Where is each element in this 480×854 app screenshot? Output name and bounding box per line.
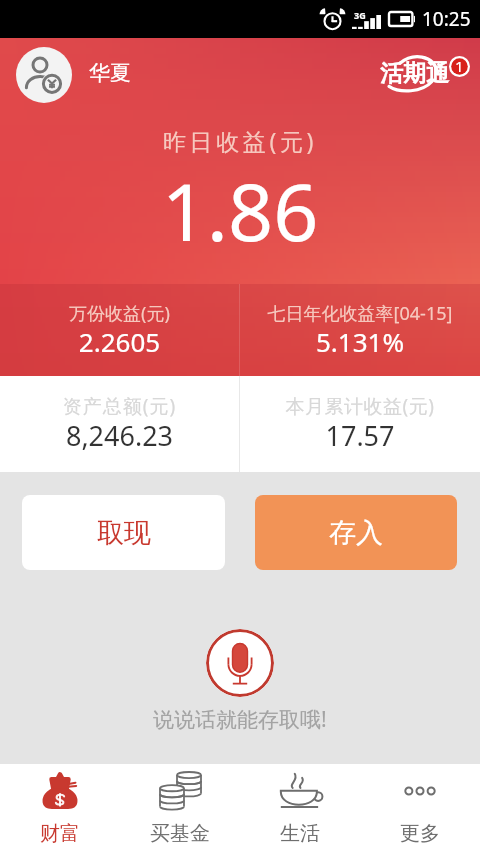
button[interactable]: 财富 (0, 764, 120, 854)
staticText: 更多 (400, 821, 440, 846)
staticText: 取现 (97, 516, 151, 550)
staticText: 资产总额(元) (0, 393, 239, 419)
staticText: 3G (354, 9, 366, 21)
button[interactable]: 买基金 (120, 764, 240, 854)
staticText: 本月累计收益(元) (240, 393, 480, 419)
staticText: 2.2605 (0, 324, 239, 359)
staticText: 活期通 (380, 59, 449, 88)
button[interactable]: 存入 (255, 495, 457, 570)
staticText: 1.86 (0, 157, 480, 265)
staticText: 万份收益(元) (0, 301, 239, 326)
staticText: 华夏 (89, 60, 131, 86)
staticText: 1 (455, 56, 464, 76)
staticText: 8,246.23 (0, 417, 239, 454)
button[interactable]: 活期通 (372, 46, 472, 94)
staticText: 生活 (280, 821, 320, 846)
staticText: 10:25 (422, 6, 471, 32)
button[interactable]: 用户 (16, 47, 72, 103)
staticText: 17.57 (240, 417, 480, 454)
staticText: 说说话就能存取哦! (153, 705, 327, 734)
button[interactable]: 生活 (240, 764, 360, 854)
staticText: 存入 (329, 516, 383, 550)
button[interactable]: 取现 (22, 495, 225, 570)
staticText: 买基金 (150, 821, 210, 846)
staticText: 七日年化收益率[04-15] (240, 301, 480, 326)
staticText: 昨日收益(元) (0, 125, 480, 156)
staticText: 财富 (40, 821, 80, 846)
button[interactable]: 语音存取 (206, 629, 274, 697)
staticText: 5.131% (240, 324, 480, 359)
button[interactable]: 更多 (360, 764, 480, 854)
